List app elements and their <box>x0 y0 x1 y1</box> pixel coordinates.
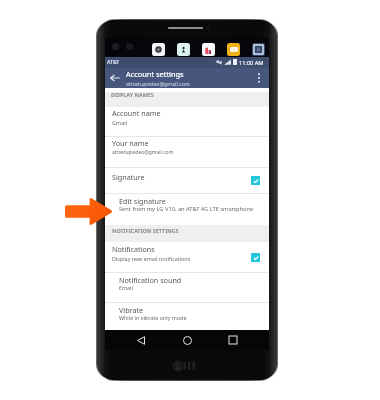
staticText: attsetupvideo@gmail.com <box>126 80 190 87</box>
button[interactable]: Your name <box>105 136 269 167</box>
staticText: Notification sound <box>119 275 182 285</box>
button[interactable]: Back <box>131 330 151 350</box>
staticText: Account settings <box>126 69 184 79</box>
button[interactable]: Notifications <box>105 241 269 272</box>
button[interactable]: Vibrate <box>105 302 269 331</box>
button[interactable]: Account name <box>105 107 269 137</box>
button[interactable]: More options <box>251 70 267 86</box>
staticText: Vibrate <box>119 305 144 315</box>
staticText: NOTIFICATION SETTINGS <box>112 227 179 234</box>
button[interactable]: Home <box>177 330 197 350</box>
staticText: attsetupvideo@gmail.com <box>112 149 174 156</box>
staticText: Sent from my LG V10, an AT&T 4G LTE smar… <box>119 205 254 213</box>
staticText: Edit signature <box>119 196 166 206</box>
staticText: Account name <box>112 108 161 118</box>
staticText: AT&T <box>107 59 120 66</box>
staticText: Notifications <box>112 244 155 254</box>
staticText: While in vibrate only mode <box>119 314 187 321</box>
button[interactable]: Navigate up <box>107 70 123 86</box>
staticText: 11:00 AM <box>239 59 264 67</box>
button[interactable]: Edit signature <box>105 193 269 225</box>
staticText: Your name <box>112 138 149 148</box>
staticText: Display new email notifications <box>112 255 191 262</box>
button[interactable]: Signature <box>105 167 269 193</box>
staticText: DISPLAY NAMES <box>111 91 154 98</box>
staticText: Signature <box>112 172 145 182</box>
staticText: Gmail <box>112 119 128 126</box>
button[interactable]: Recent apps <box>223 330 243 350</box>
staticText: Email <box>119 284 133 291</box>
button[interactable]: Notification sound <box>105 272 269 302</box>
